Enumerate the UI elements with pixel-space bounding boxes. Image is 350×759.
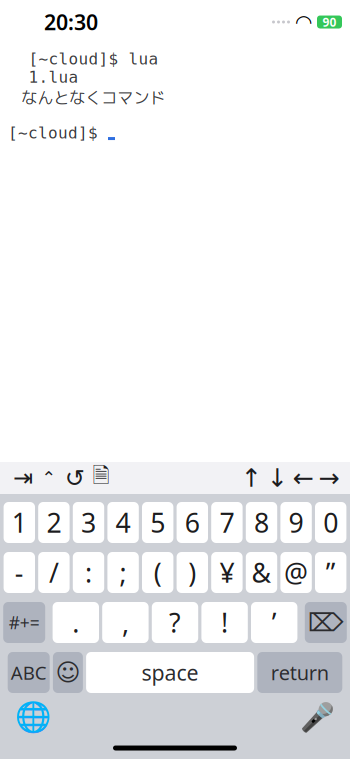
staticText: @ xyxy=(284,555,308,590)
button[interactable]: 8 xyxy=(246,502,277,543)
button[interactable]: ABC xyxy=(8,652,50,693)
staticText: ABC xyxy=(11,660,47,685)
staticText: 20:30 xyxy=(44,8,98,36)
staticText: → xyxy=(318,464,339,492)
staticText: 8 xyxy=(254,505,269,540)
staticText: 1 xyxy=(12,505,27,540)
button[interactable]: Down xyxy=(264,465,290,491)
staticText: ☺ xyxy=(55,659,80,686)
staticText: ? xyxy=(169,605,181,640)
staticText: ◠ xyxy=(296,11,311,33)
staticText: ’ xyxy=(272,605,277,640)
staticText: ← xyxy=(292,464,313,492)
button[interactable]: Left xyxy=(290,465,316,491)
button[interactable]: Paste xyxy=(88,465,114,491)
staticText: space xyxy=(142,658,199,687)
staticText: ) xyxy=(188,555,196,590)
button[interactable]: return xyxy=(257,652,342,693)
staticText: 7 xyxy=(219,505,234,540)
staticText: 90 xyxy=(322,14,336,30)
staticText: 2 xyxy=(46,505,61,540)
button[interactable]: Emoji xyxy=(53,652,83,693)
button[interactable]: Up xyxy=(238,465,264,491)
button[interactable]: . xyxy=(53,602,99,643)
staticText: ! xyxy=(221,605,228,640)
staticText: ⌦ xyxy=(308,608,344,637)
staticText: 6 xyxy=(185,505,200,540)
button[interactable]: , xyxy=(102,602,149,643)
staticText: ¥ xyxy=(219,555,234,590)
button[interactable]: Control xyxy=(36,465,62,491)
button[interactable]: Tab xyxy=(10,465,36,491)
button[interactable]: Right xyxy=(316,465,342,491)
button[interactable]: - xyxy=(4,552,35,593)
button[interactable]: Dictate xyxy=(300,700,334,734)
button[interactable]: ? xyxy=(152,602,198,643)
staticText: 9 xyxy=(289,505,304,540)
button[interactable]: ) xyxy=(177,552,208,593)
staticText: ↓ xyxy=(266,464,287,492)
button[interactable]: 1 xyxy=(4,502,35,543)
button[interactable]: 2 xyxy=(38,502,70,543)
staticText: 0 xyxy=(323,505,338,540)
button[interactable]: 4 xyxy=(107,502,139,543)
staticText: ” xyxy=(326,555,336,590)
staticText: 🎤 xyxy=(299,701,334,733)
staticText: ↺ xyxy=(65,464,85,492)
staticText: なんとなくコマンド xyxy=(21,88,165,108)
button[interactable]: 0 xyxy=(315,502,346,543)
staticText: return xyxy=(271,659,329,686)
staticText: ↑ xyxy=(240,464,261,492)
button[interactable]: Next keyboard xyxy=(16,700,50,734)
button[interactable]: ( xyxy=(142,552,173,593)
button[interactable]: ” xyxy=(315,552,346,593)
button[interactable]: & xyxy=(246,552,277,593)
button[interactable]: 6 xyxy=(177,502,208,543)
button[interactable]: space xyxy=(86,652,254,693)
staticText: ( xyxy=(154,555,162,590)
staticText: ⌃ xyxy=(41,468,56,488)
button[interactable]: ; xyxy=(107,552,139,593)
staticText: #+= xyxy=(9,611,40,634)
staticText: , xyxy=(122,605,129,640)
button[interactable]: #+= xyxy=(3,602,45,643)
staticText: 🌐 xyxy=(14,700,51,734)
staticText: [~cloud]$ xyxy=(8,124,108,142)
button[interactable]: ’ xyxy=(251,602,297,643)
staticText: . xyxy=(72,605,79,640)
staticText: ⇥ xyxy=(13,464,33,492)
button[interactable]: Delete xyxy=(305,602,347,643)
button[interactable]: ¥ xyxy=(211,552,243,593)
button[interactable]: 9 xyxy=(280,502,312,543)
button[interactable]: ! xyxy=(201,602,248,643)
button[interactable]: : xyxy=(73,552,104,593)
staticText: & xyxy=(251,555,271,590)
staticText: 4 xyxy=(116,505,131,540)
button[interactable]: 5 xyxy=(142,502,173,543)
button[interactable]: 3 xyxy=(73,502,104,543)
staticText: : xyxy=(85,555,92,590)
button[interactable]: @ xyxy=(280,552,312,593)
staticText: 3 xyxy=(81,505,96,540)
staticText: / xyxy=(49,555,59,590)
button[interactable]: / xyxy=(38,552,70,593)
staticText: 🗎 xyxy=(92,460,109,496)
staticText: [~cloud]$ lua 1.lua xyxy=(28,50,158,86)
staticText: 5 xyxy=(150,505,165,540)
staticText: - xyxy=(15,555,24,590)
button[interactable]: Undo xyxy=(62,465,88,491)
button[interactable]: 7 xyxy=(211,502,243,543)
staticText: ; xyxy=(120,555,127,590)
